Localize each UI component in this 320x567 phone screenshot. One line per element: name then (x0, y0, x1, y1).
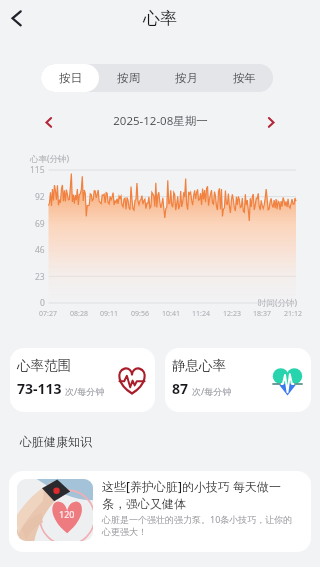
staticText: 09:11 (100, 309, 118, 319)
button[interactable]: Back (3, 4, 30, 31)
staticText: 时间(分钟) (258, 297, 298, 309)
staticText: 11:24 (192, 309, 210, 319)
button[interactable]: Previous day (38, 110, 60, 132)
staticText: 23 (35, 271, 45, 283)
button[interactable]: 按年 (215, 64, 273, 92)
staticText: 次/每分钟 (192, 385, 232, 397)
staticText: 静息心率 (172, 357, 226, 374)
button[interactable]: 心率范围 (10, 348, 155, 412)
button[interactable]: 120 (9, 471, 311, 552)
staticText: 次/每分钟 (65, 385, 105, 397)
button[interactable]: 按月 (157, 64, 215, 92)
staticText: 73-113 (17, 379, 62, 398)
staticText: 115 (30, 164, 45, 176)
staticText: 46 (35, 244, 45, 256)
staticText: 0 (40, 297, 45, 309)
staticText: 07:27 (39, 309, 57, 319)
button[interactable]: 按周 (99, 64, 157, 92)
staticText: 10:41 (162, 309, 180, 319)
staticText: 这些[养护心脏]的小技巧 每天做一条，强心又健体 (102, 478, 300, 511)
staticText: 69 (35, 218, 45, 230)
staticText: 09:56 (131, 309, 149, 319)
staticText: 心脏是一个强壮的强力泵。10条小技巧，让你的心更强大！ (102, 513, 300, 538)
staticText: 87 (172, 379, 189, 398)
button[interactable]: 静息心率 (165, 348, 311, 412)
staticText: 心率 (143, 8, 177, 29)
staticText: 92 (35, 191, 45, 203)
button[interactable]: Next day (260, 110, 282, 132)
staticText: 按周 (117, 71, 140, 85)
staticText: 12:23 (223, 309, 241, 319)
staticText: 心率(分钟) (30, 153, 70, 165)
staticText: 按月 (175, 71, 198, 85)
staticText: 21:12 (284, 309, 302, 319)
staticText: 18:37 (253, 309, 271, 319)
button[interactable]: 按日 (41, 64, 99, 92)
staticText: 按年 (233, 71, 256, 85)
staticText: 2025-12-08星期一 (113, 113, 208, 129)
staticText: 按日 (59, 71, 82, 85)
staticText: 心率范围 (17, 357, 71, 374)
staticText: 120 (59, 508, 75, 520)
staticText: 08:28 (70, 309, 88, 319)
staticText: 心脏健康知识 (20, 434, 92, 449)
